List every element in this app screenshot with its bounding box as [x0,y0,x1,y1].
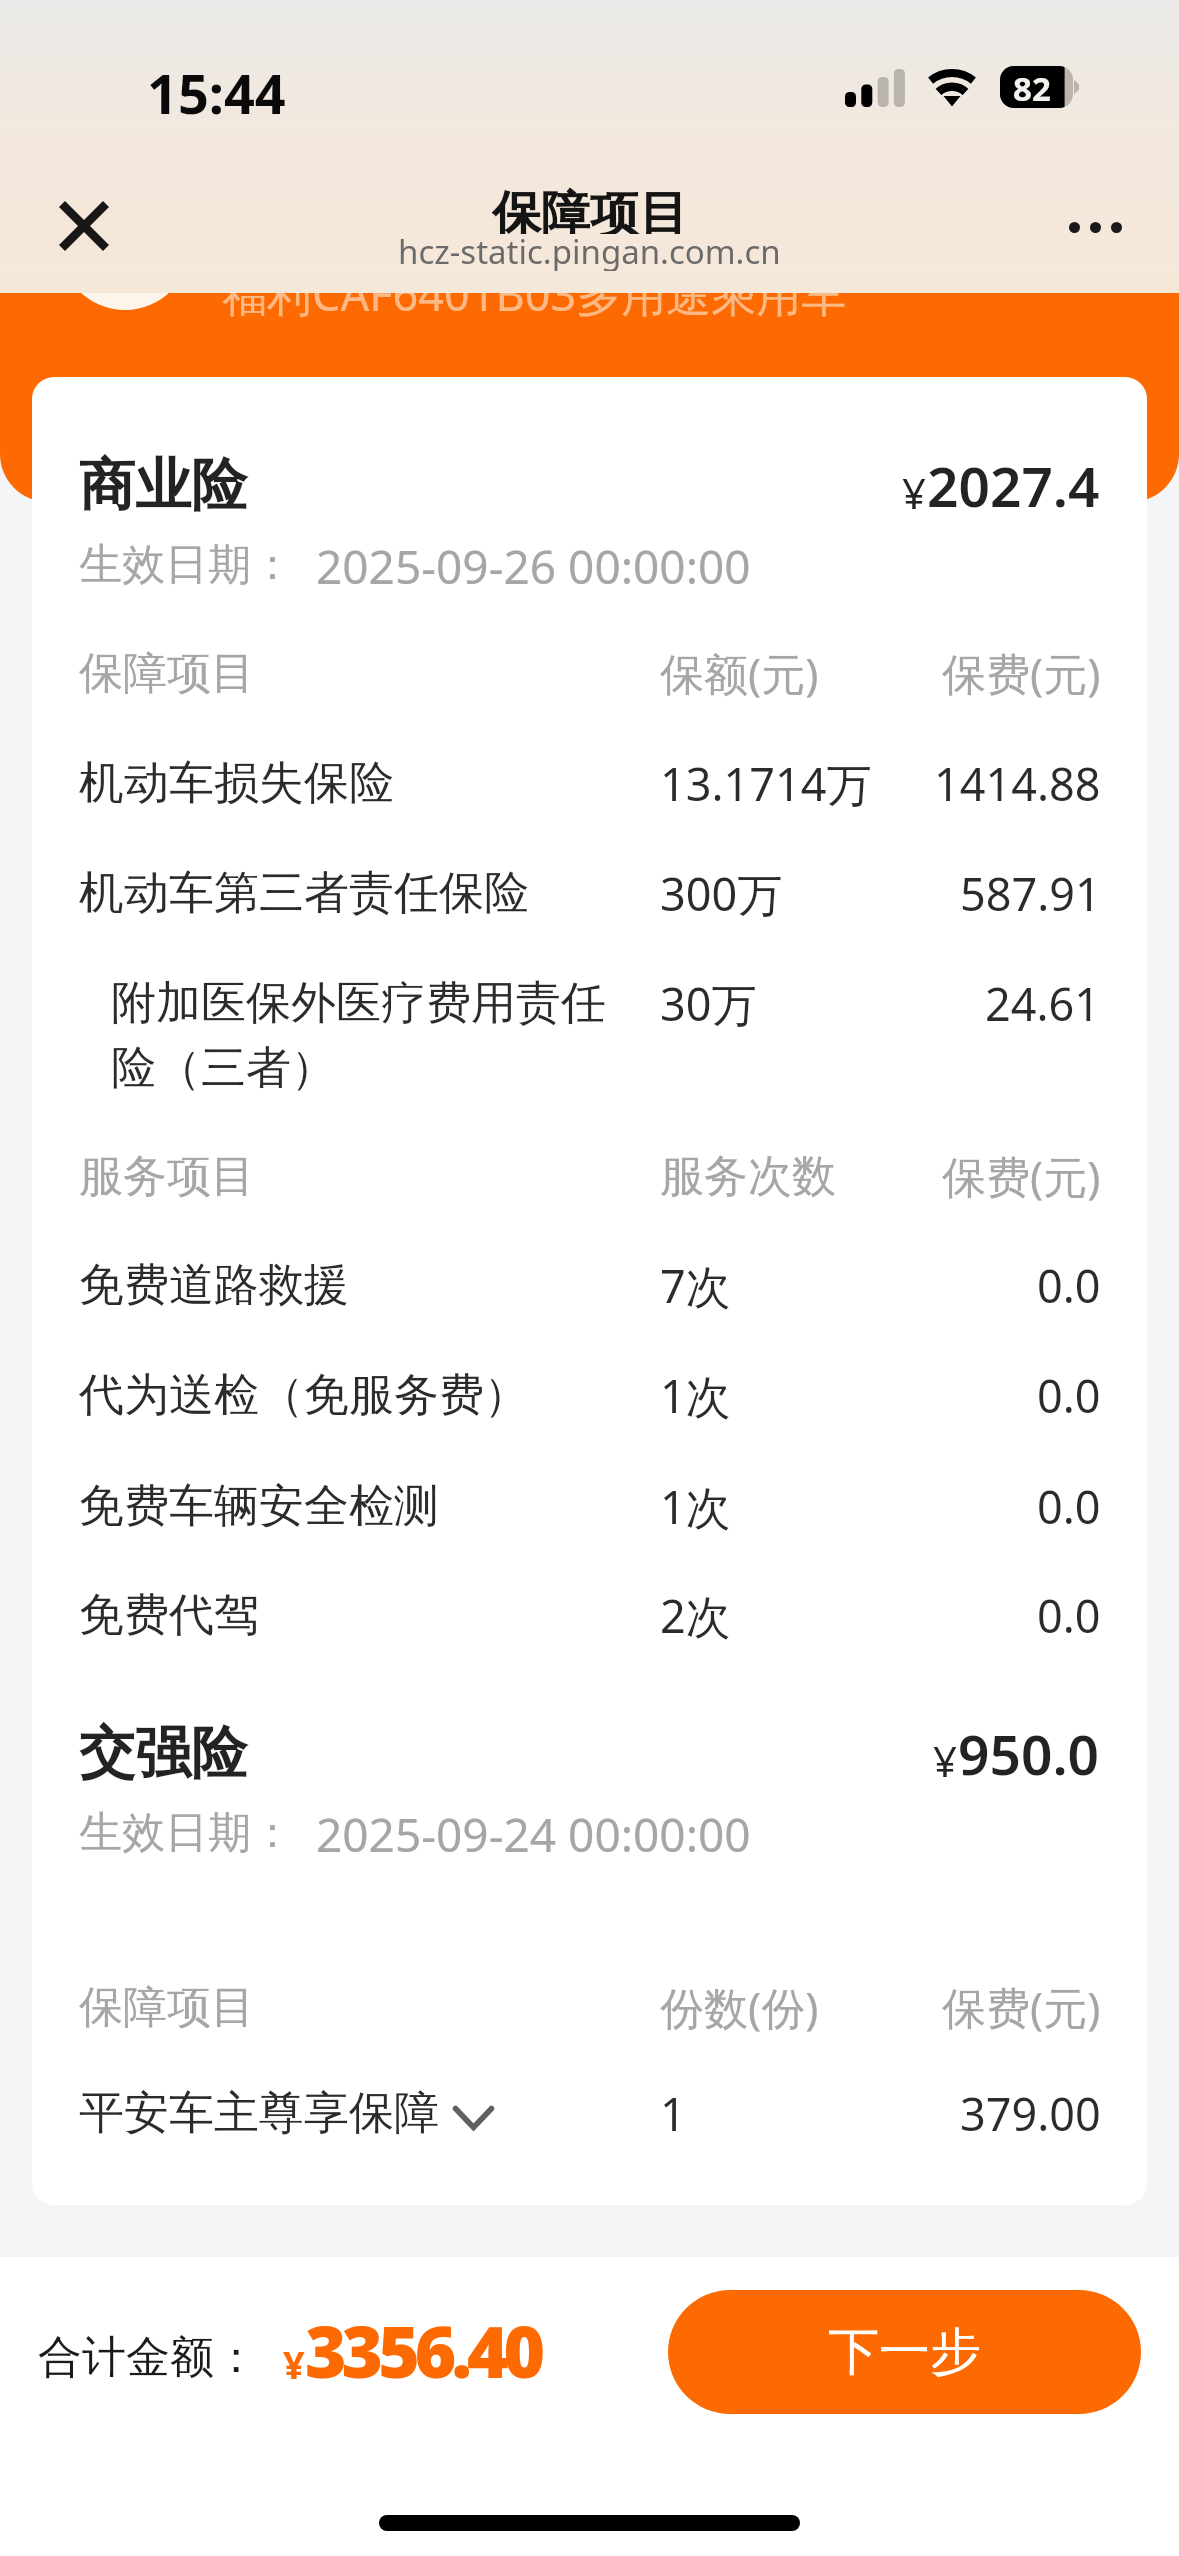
staticText: 379.00 [960,2083,1101,2144]
staticText: 保额(元) [660,643,819,703]
button[interactable]: 免费道路救援 [32,1243,1147,1327]
staticText: 机动车第三者责任保险 [79,865,529,922]
staticText: 587.91 [960,863,1101,924]
staticText: 服务次数 [660,1149,836,1204]
button[interactable]: Close [34,176,134,276]
staticText: 福利CAF6401B03多用途乘用车 [222,263,847,324]
staticText: hcz-static.pingan.com.cn [398,229,781,271]
staticText: 保费(元) [942,643,1101,703]
staticText: 服务项目 [79,1149,255,1204]
staticText: 1次 [660,1365,731,1426]
staticText: 0.0 [1037,1365,1101,1426]
staticText: 82 [1013,66,1051,108]
staticText: 平安车主尊享保障 [79,2085,439,2142]
staticText: 生效日期： [79,538,294,592]
staticText: 3356.40 [305,2302,541,2399]
button[interactable]: 免费车辆安全检测 [32,1464,1147,1548]
staticText: 免费道路救援 [79,1257,349,1314]
staticText: 保障项目 [79,1980,255,2035]
staticText: 24.61 [985,973,1101,1033]
button[interactable]: 下一步 [668,2290,1141,2414]
button[interactable]: 平安车主尊享保障 379.00, expand details [32,2071,1147,2155]
staticText: 保障项目 [492,184,688,234]
staticText: 合计金额： [38,2330,258,2385]
staticText: 保费(元) [942,1146,1101,1206]
staticText: 1 [660,2083,686,2144]
staticText: ¥ [902,464,927,521]
staticText: 30万 [660,973,757,1033]
staticText: 保障项目 [79,646,255,701]
staticText: 0.0 [1037,1476,1101,1537]
staticText: 2027.4 [927,448,1100,523]
staticText: 机动车损失保险 [79,755,394,812]
staticText: 免费车辆安全检测 [79,1478,439,1535]
staticText: ¥ [283,2338,305,2390]
staticText: 13.1714万 [660,753,872,814]
staticText: 0.0 [1037,1255,1101,1316]
staticText: 险（三者） [111,1040,336,1097]
staticText: 0.0 [1037,1585,1101,1646]
staticText: 代为送检（免服务费） [79,1367,529,1424]
staticText: ¥ [933,1732,958,1789]
staticText: 份数(份) [660,1977,819,2037]
staticText: 保费(元) [942,1977,1101,2037]
button[interactable]: 免费代驾 [32,1573,1147,1657]
staticText: 2025-09-24 00:00:00 [316,1803,751,1863]
staticText: 2025-09-26 00:00:00 [316,535,751,595]
staticText: 950.0 [958,1716,1100,1791]
button[interactable]: 代为送检（免服务费） [32,1353,1147,1437]
staticText: 1414.88 [934,753,1101,814]
staticText: 300万 [660,863,783,924]
button[interactable]: 机动车损失保险 [32,741,1147,825]
button[interactable]: 机动车第三者责任保险 [32,851,1147,935]
staticText: 7次 [660,1255,731,1316]
staticText: 免费代驾 [79,1587,259,1644]
staticText: 附加医保外医疗费用责任 [111,975,606,1032]
staticText: 15:44 [147,56,286,130]
staticText: 交强险 [79,1718,247,1789]
staticText: 2次 [660,1585,731,1646]
staticText: 商业险 [79,450,247,521]
button[interactable]: More options [1045,177,1145,277]
staticText: 1次 [660,1476,731,1537]
staticText: 下一步 [828,2320,981,2384]
staticText: 生效日期： [79,1806,294,1860]
